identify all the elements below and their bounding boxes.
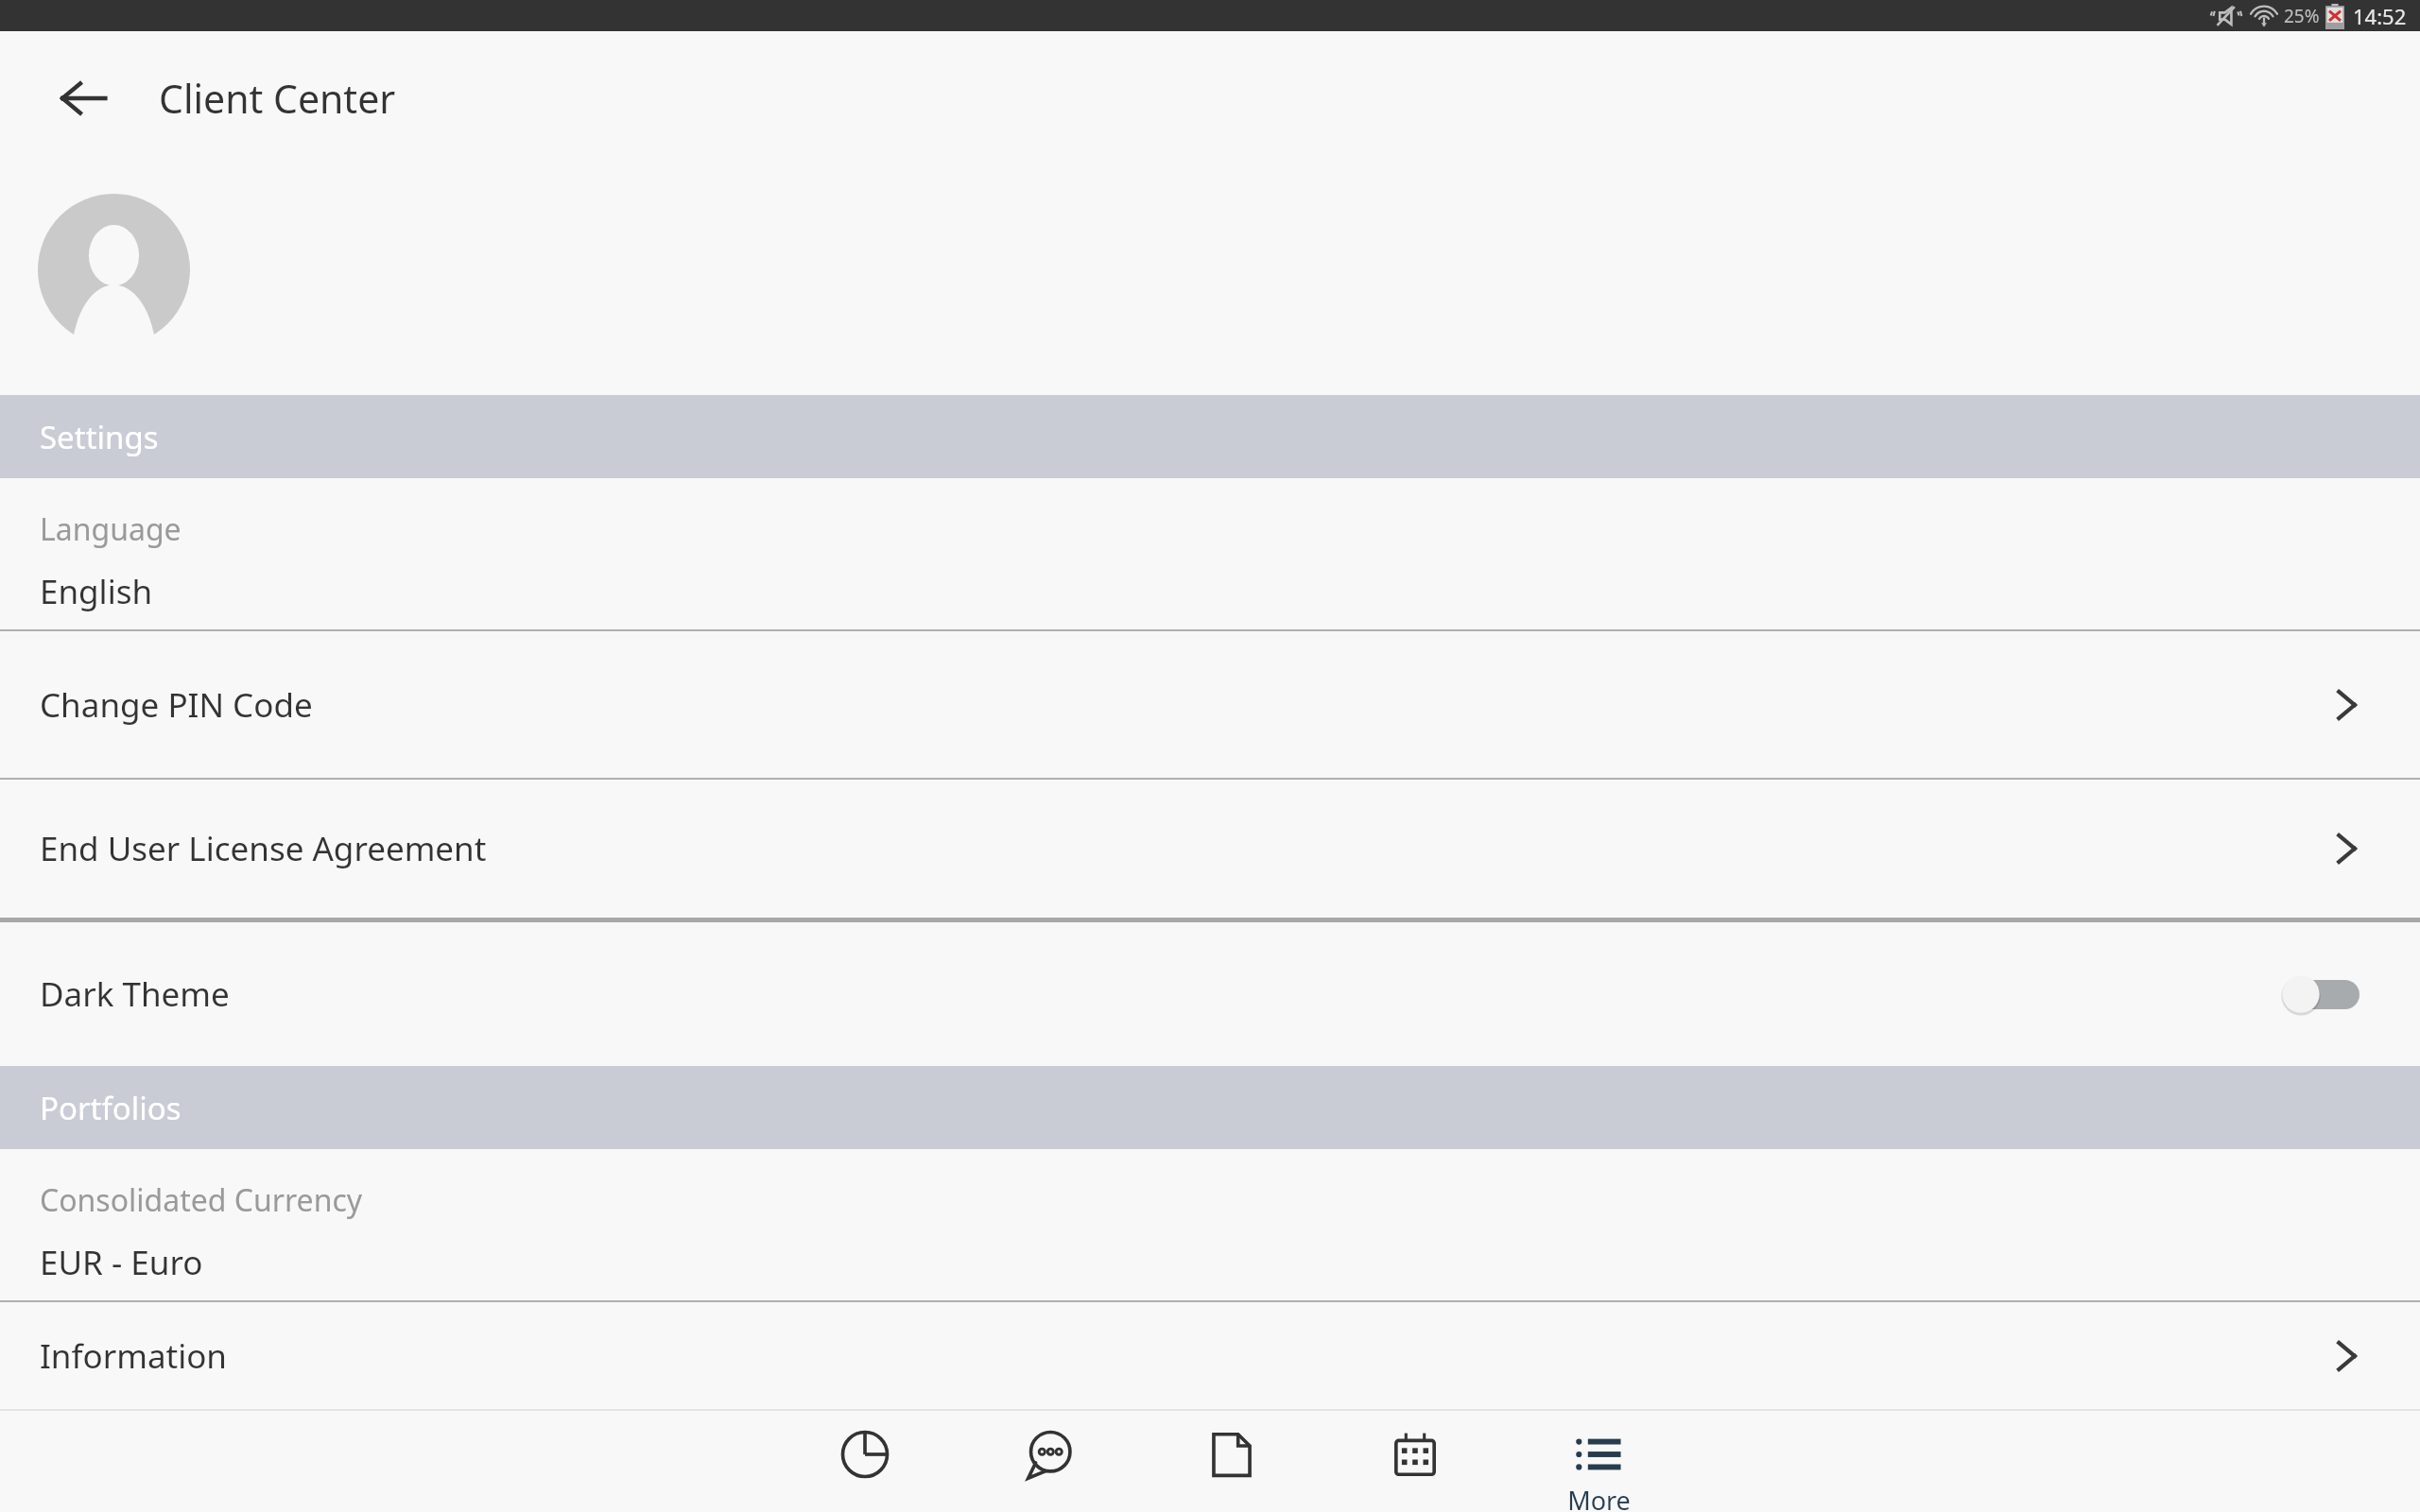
- staticText: 25%: [2284, 4, 2320, 28]
- staticText: Consolidated Currency: [40, 1179, 363, 1221]
- staticText: EUR - Euro: [40, 1240, 203, 1285]
- button[interactable]: Documents: [1140, 1411, 1323, 1512]
- button[interactable]: End User License Agreement: [0, 780, 2420, 918]
- button[interactable]: Information: [0, 1302, 2420, 1409]
- button[interactable]: Consolidated Currency: [0, 1149, 2420, 1300]
- button[interactable]: Dark Theme toggle, off: [2278, 971, 2363, 1017]
- staticText: More: [1567, 1483, 1631, 1512]
- button[interactable]: Profile photo: [38, 194, 190, 346]
- staticText: Dark Theme: [40, 971, 2375, 1017]
- button[interactable]: Overview: [773, 1411, 957, 1512]
- staticText: End User License Agreement: [40, 826, 2418, 871]
- staticText: English: [40, 569, 153, 614]
- button[interactable]: Change PIN Code: [0, 631, 2420, 778]
- button[interactable]: Messages: [957, 1411, 1140, 1512]
- button[interactable]: Dark Theme: [0, 922, 2420, 1066]
- button[interactable]: Calendar: [1323, 1411, 1507, 1512]
- staticText: Language: [40, 508, 181, 550]
- staticText: 14:52: [2353, 2, 2407, 30]
- button[interactable]: More: [1507, 1411, 1690, 1512]
- staticText: Client Center: [159, 72, 396, 125]
- staticText: Settings: [40, 416, 159, 458]
- button[interactable]: Language: [0, 478, 2420, 629]
- staticText: Change PIN Code: [40, 682, 2418, 728]
- button[interactable]: Back: [38, 53, 129, 144]
- staticText: Portfolios: [40, 1087, 181, 1129]
- staticText: Information: [40, 1333, 2418, 1379]
